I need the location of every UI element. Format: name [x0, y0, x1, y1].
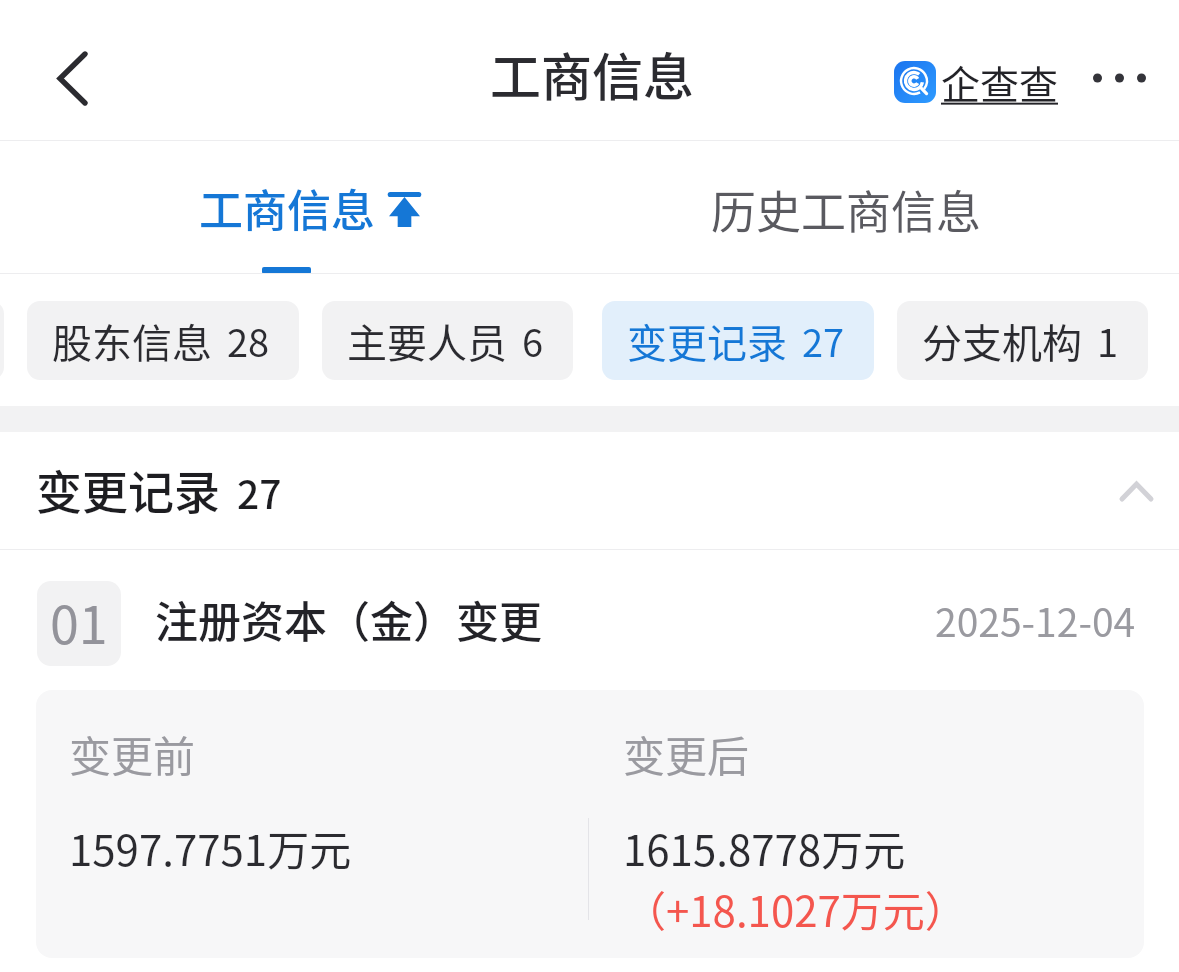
staticText: 27: [237, 464, 282, 520]
staticText: 企查查: [941, 54, 1059, 110]
staticText: 28: [227, 313, 270, 368]
staticText: 注册资本（金）变更: [155, 588, 542, 650]
staticText: 变更后: [623, 723, 750, 784]
button[interactable]: 历史工商信息: [589, 141, 1179, 273]
staticText: 股东信息: [52, 312, 212, 370]
button[interactable]: [0, 550, 1179, 960]
staticText: 工商信息: [199, 176, 375, 240]
button[interactable]: 变更记录: [0, 432, 1179, 549]
staticText: 1615.8778万元: [623, 817, 906, 878]
button[interactable]: Collapse section: [1107, 462, 1166, 521]
button[interactable]: 主要人员: [322, 301, 573, 380]
button[interactable]: 分支机构: [897, 301, 1148, 380]
staticText: 变更前: [69, 723, 196, 784]
staticText: （+18.1027万元）: [624, 878, 967, 939]
staticText: 变更记录: [36, 456, 220, 523]
staticText: 主要人员: [347, 312, 507, 370]
staticText: 6: [522, 313, 544, 368]
button[interactable]: 企查查: [890, 50, 1063, 114]
staticText: 工商信息: [490, 37, 695, 111]
staticText: 1597.7751万元: [69, 817, 352, 878]
staticText: 历史工商信息: [711, 177, 982, 242]
button[interactable]: 工商信息: [0, 141, 589, 273]
button[interactable]: More options: [1081, 40, 1157, 116]
button[interactable]: 变更记录: [602, 301, 874, 380]
staticText: 27: [802, 313, 845, 368]
staticText: 1: [1097, 313, 1119, 368]
button[interactable]: Back: [30, 34, 114, 122]
staticText: 01: [50, 584, 108, 659]
staticText: 变更记录: [627, 312, 787, 370]
button[interactable]: 股东信息: [27, 301, 299, 380]
staticText: 分支机构: [922, 312, 1082, 370]
staticText: 2025-12-04: [935, 592, 1136, 648]
